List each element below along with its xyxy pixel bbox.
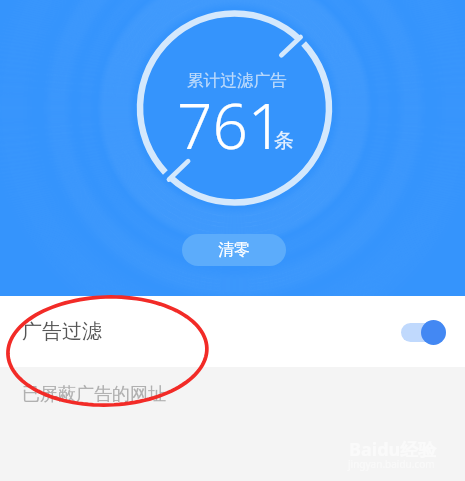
staticText: 累计过滤广告 bbox=[187, 70, 287, 91]
button[interactable]: 广告过滤开关 bbox=[401, 319, 446, 345]
button[interactable]: 广告过滤 bbox=[0, 296, 465, 367]
staticText: 清零 bbox=[218, 240, 250, 260]
staticText: 广告过滤 bbox=[22, 319, 102, 344]
button[interactable]: 清零 bbox=[182, 234, 286, 266]
staticText: 761 bbox=[177, 83, 284, 167]
staticText: 已屏蔽广告的网址 bbox=[22, 383, 166, 406]
staticText: 条 bbox=[274, 128, 294, 153]
